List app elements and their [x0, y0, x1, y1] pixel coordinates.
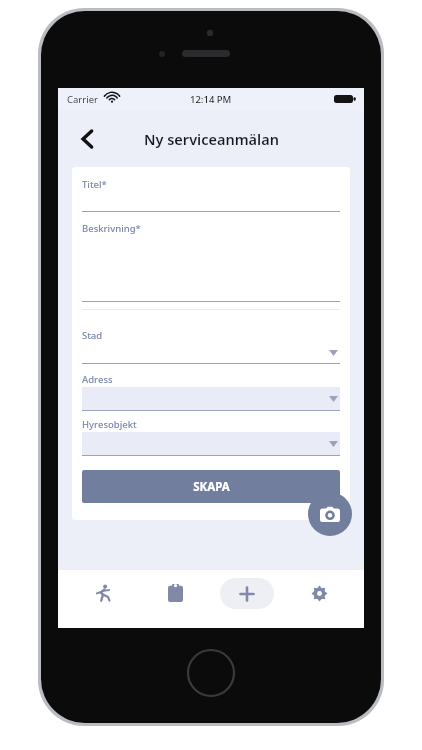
staticText: SKAPA: [193, 479, 230, 495]
button[interactable]: Tasks: [148, 573, 202, 613]
staticText: Stad: [82, 329, 103, 342]
button[interactable]: SKAPA: [82, 470, 340, 503]
button[interactable]: Add: [220, 578, 274, 609]
button[interactable]: [82, 343, 340, 363]
button[interactable]: [82, 387, 340, 411]
staticText: Ny serviceanmälan: [144, 129, 279, 149]
staticText: Beskrivning*: [82, 222, 141, 235]
staticText: Titel*: [82, 178, 107, 191]
staticText: Hyresobjekt: [82, 418, 137, 431]
staticText: Adress: [82, 373, 113, 386]
button[interactable]: Back: [70, 122, 104, 156]
staticText: 12:14 PM: [190, 93, 232, 106]
button[interactable]: Take photo: [308, 492, 352, 536]
button[interactable]: Activity: [76, 573, 130, 613]
staticText: Carrier: [67, 93, 98, 106]
button[interactable]: Settings: [292, 573, 346, 613]
button[interactable]: [82, 432, 340, 456]
